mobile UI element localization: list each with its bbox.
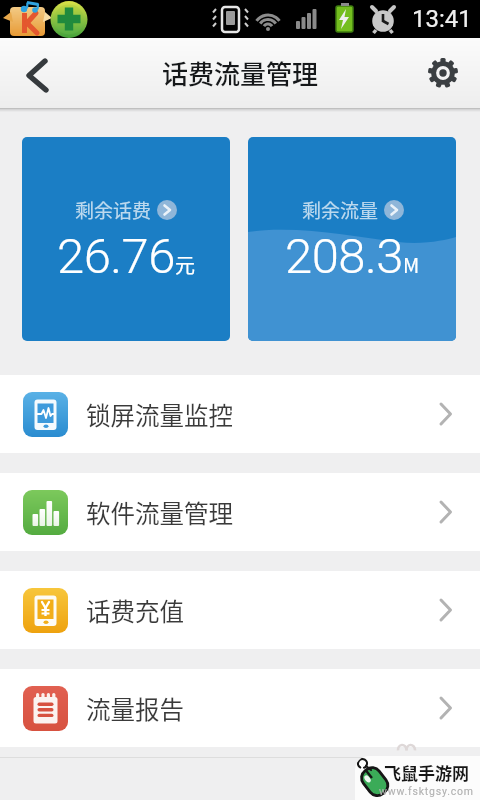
staticText: 13:41 — [412, 5, 472, 33]
staticText: 剩余流量 — [302, 196, 379, 224]
staticText: 26.76 — [57, 228, 175, 285]
staticText: 208.3 — [285, 228, 403, 285]
staticText: 话费流量管理 — [162, 54, 319, 92]
button[interactable]: 软件流量管理 — [0, 473, 480, 551]
button[interactable] — [410, 38, 480, 108]
staticText: 话费充值 — [86, 593, 184, 628]
staticText: 软件流量管理 — [86, 495, 233, 530]
staticText: M — [403, 250, 420, 279]
button[interactable]: 话费充值 — [0, 571, 480, 649]
staticText: 流量报告 — [86, 691, 184, 726]
staticText: 元 — [175, 250, 195, 279]
staticText: 飞鼠手游网 — [384, 760, 469, 785]
button[interactable] — [0, 38, 60, 108]
button[interactable]: 剩余话费 — [22, 137, 230, 341]
staticText: 剩余话费 — [75, 196, 152, 224]
staticText: www.fsktgsy.com — [379, 785, 474, 797]
button[interactable]: 剩余流量 — [248, 137, 456, 341]
button[interactable]: 锁屏流量监控 — [0, 375, 480, 453]
staticText: 锁屏流量监控 — [86, 397, 233, 432]
button[interactable]: 流量报告 — [0, 669, 480, 747]
